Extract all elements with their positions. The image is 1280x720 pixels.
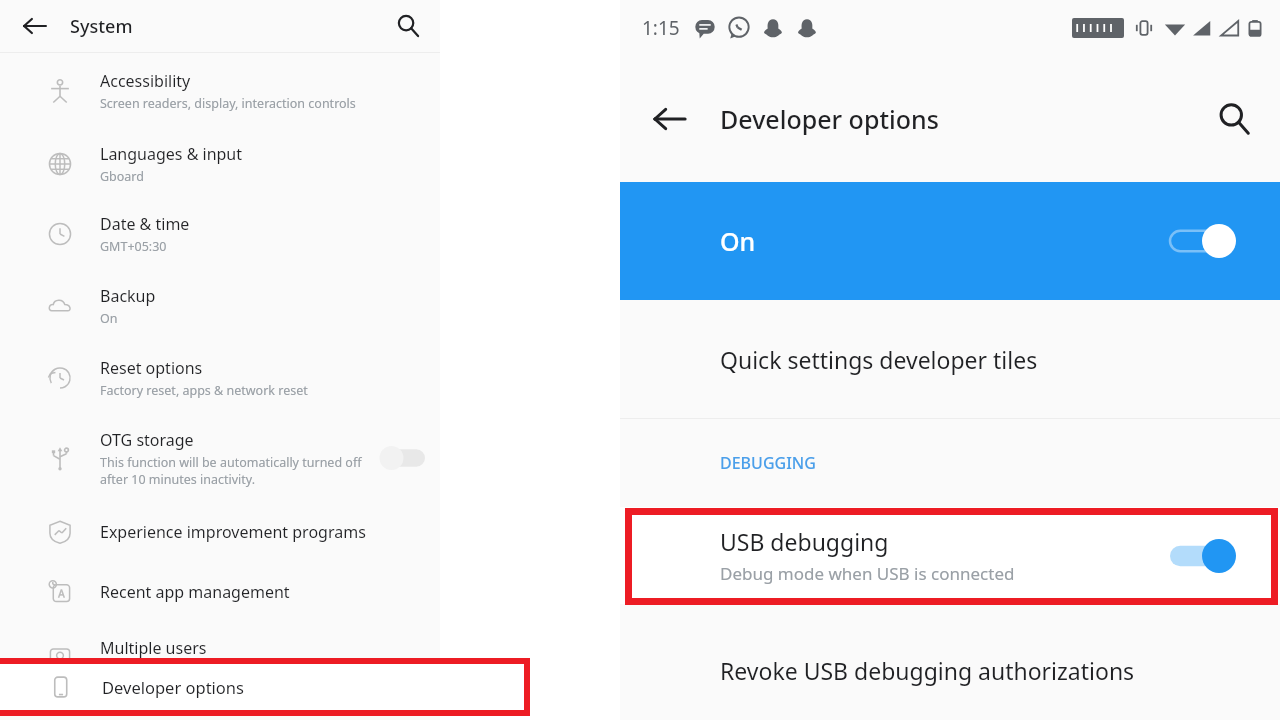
button[interactable]: Languages & input bbox=[0, 129, 440, 198]
staticText: On bbox=[720, 224, 756, 258]
staticText: OTG storage bbox=[100, 429, 194, 451]
button[interactable]: Revoke USB debugging authorizations bbox=[620, 624, 1280, 716]
button[interactable]: Recent app management bbox=[0, 562, 440, 622]
button[interactable]: Search bbox=[1188, 79, 1280, 159]
button[interactable]: Back bbox=[620, 79, 720, 159]
button[interactable]: Accessibility bbox=[0, 53, 440, 129]
staticText: GMT+05:30 bbox=[100, 238, 167, 255]
staticText: Debug mode when USB is connected bbox=[720, 562, 1015, 585]
staticText: Screen readers, display, interaction con… bbox=[100, 95, 356, 112]
staticText: Languages & input bbox=[100, 143, 243, 165]
staticText: System bbox=[70, 14, 133, 39]
staticText: Experience improvement programs bbox=[100, 521, 366, 543]
staticText: On bbox=[100, 310, 118, 327]
staticText: Gboard bbox=[100, 168, 144, 185]
staticText: Developer options bbox=[102, 676, 244, 698]
button[interactable]: Quick settings developer tiles bbox=[620, 300, 1280, 418]
button[interactable]: Back bbox=[0, 0, 70, 52]
staticText: DEBUGGING bbox=[720, 452, 816, 474]
staticText: 1:15 bbox=[642, 15, 680, 41]
button[interactable]: Backup bbox=[0, 270, 440, 342]
staticText: Recent app management bbox=[100, 581, 290, 603]
button[interactable]: Multiple users bbox=[0, 622, 440, 694]
staticText: Multiple users bbox=[100, 637, 207, 659]
button[interactable]: OTG storage toggle bbox=[364, 428, 440, 488]
staticText: USB debugging bbox=[720, 526, 889, 557]
button[interactable]: OTG storage bbox=[0, 414, 440, 502]
staticText: Date & time bbox=[100, 213, 190, 235]
staticText: Revoke USB debugging authorizations bbox=[720, 655, 1135, 686]
button[interactable]: Search bbox=[376, 0, 440, 52]
staticText: Quick settings developer tiles bbox=[720, 344, 1038, 375]
staticText: after 10 minutes inactivity. bbox=[100, 471, 256, 488]
staticText: Signed in as Ayush Gogia bbox=[100, 662, 248, 679]
button[interactable]: Developer options bbox=[0, 658, 530, 716]
staticText: Developer options bbox=[720, 102, 939, 136]
staticText: Accessibility bbox=[100, 70, 191, 92]
staticText: Reset options bbox=[100, 357, 203, 379]
staticText: Factory reset, apps & network reset bbox=[100, 382, 308, 399]
button[interactable]: On bbox=[620, 182, 1280, 300]
staticText: Backup bbox=[100, 285, 156, 307]
staticText: This function will be automatically turn… bbox=[100, 454, 362, 471]
button[interactable]: USB debugging bbox=[620, 507, 1280, 604]
button[interactable]: Date & time bbox=[0, 198, 440, 270]
button[interactable]: Experience improvement programs bbox=[0, 502, 440, 562]
button[interactable]: Reset options bbox=[0, 342, 440, 414]
